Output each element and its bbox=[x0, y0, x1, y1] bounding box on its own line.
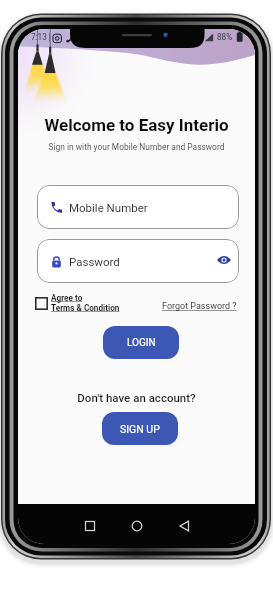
staticText: 88% bbox=[217, 32, 233, 42]
button[interactable]: Agree to bbox=[35, 293, 117, 313]
staticText: Don't have an account? bbox=[18, 391, 255, 407]
button[interactable]: LOGIN bbox=[103, 326, 179, 359]
staticText: LOGIN bbox=[127, 337, 156, 349]
staticText: Sign in with your Mobile Number and Pass… bbox=[18, 142, 255, 156]
button[interactable]: Forgot Password ? bbox=[162, 301, 237, 312]
staticText: Welcome to Easy Interio bbox=[18, 115, 255, 139]
button[interactable]: Mobile Number bbox=[37, 185, 239, 229]
staticText: Agree to bbox=[51, 293, 83, 303]
staticText: Terms & Condition bbox=[51, 303, 120, 313]
button[interactable]: Password bbox=[37, 239, 239, 283]
button[interactable]: Recent apps bbox=[82, 518, 98, 534]
staticText: 7:13 bbox=[31, 32, 47, 42]
button[interactable]: SIGN UP bbox=[102, 412, 178, 445]
staticText: Mobile Number bbox=[69, 201, 148, 214]
button[interactable]: Show password bbox=[215, 251, 233, 269]
staticText: Forgot Password ? bbox=[162, 301, 237, 312]
staticText: Password bbox=[69, 255, 120, 268]
staticText: SIGN UP bbox=[120, 423, 160, 435]
button[interactable]: Home bbox=[129, 518, 145, 534]
button[interactable]: Back bbox=[177, 518, 193, 534]
